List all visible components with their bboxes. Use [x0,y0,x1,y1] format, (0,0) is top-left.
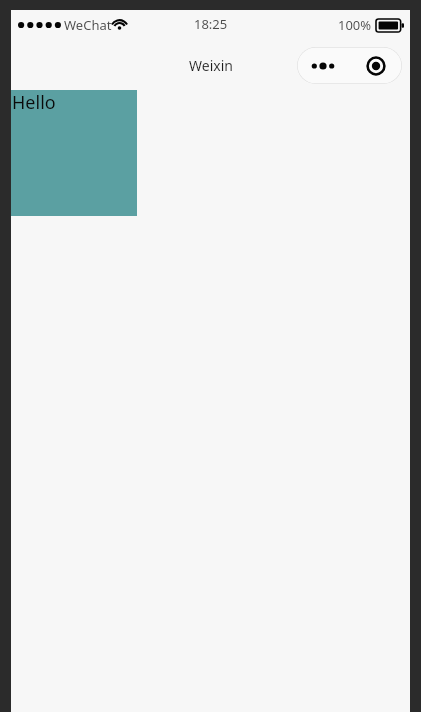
staticText: Hello [12,90,56,115]
staticText: 18:25 [194,15,228,33]
staticText: WeChat [64,16,112,34]
staticText: 100% [338,16,372,34]
staticText: Weixin [189,56,233,75]
button[interactable]: Mini program menu [297,47,402,84]
button[interactable]: Hello [11,90,137,216]
